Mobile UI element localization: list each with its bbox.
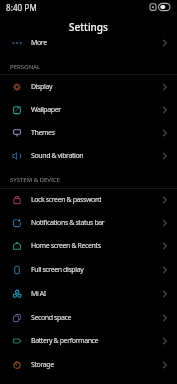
staticText: Battery & performance (31, 336, 99, 346)
staticText: More (31, 38, 47, 48)
staticText: 8:40 PM (6, 2, 37, 13)
button[interactable]: Home screen & Recents (0, 236, 177, 255)
staticText: Lock screen & password (31, 195, 102, 205)
staticText: Full screen display (31, 265, 84, 275)
staticText: Themes (31, 128, 55, 138)
staticText: Second space (31, 313, 71, 323)
button[interactable]: Notifications & status bar (0, 213, 177, 232)
button[interactable]: Lock screen & password (0, 190, 177, 209)
button[interactable]: Wallpaper (0, 100, 177, 119)
button[interactable]: More (0, 33, 177, 52)
staticText: Display (31, 82, 53, 92)
button[interactable]: Display (0, 77, 177, 96)
staticText: Home screen & Recents (31, 241, 101, 251)
button[interactable]: Full screen display (0, 260, 177, 279)
staticText: Sound & vibration (31, 151, 84, 161)
button[interactable]: Sound & vibration (0, 146, 177, 165)
button[interactable]: Themes (0, 123, 177, 142)
staticText: SYSTEM & DEVICE (10, 176, 61, 184)
staticText: Wallpaper (31, 105, 61, 115)
button[interactable]: Battery & performance (0, 331, 177, 350)
staticText: Mi AI (31, 289, 46, 299)
staticText: PERSONAL (10, 63, 41, 71)
button[interactable]: Storage (0, 355, 177, 374)
button[interactable]: Second space (0, 308, 177, 327)
button[interactable]: Mi AI (0, 284, 177, 303)
staticText: Notifications & status bar (31, 218, 105, 228)
staticText: Settings (69, 20, 108, 34)
staticText: Storage (31, 360, 54, 370)
